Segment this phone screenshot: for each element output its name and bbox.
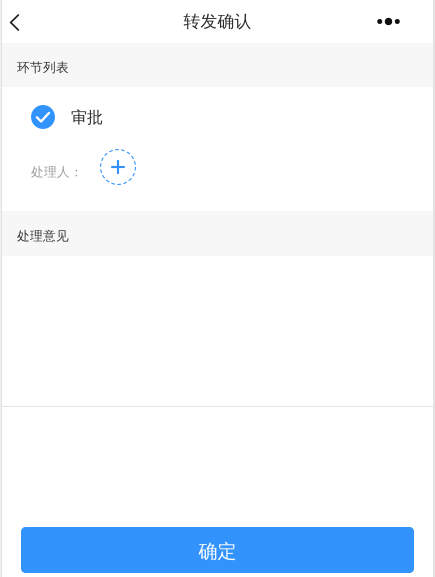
button[interactable]: Back bbox=[0, 0, 28, 43]
button[interactable]: 处理意见 bbox=[0, 256, 435, 407]
staticText: 环节列表 bbox=[17, 59, 69, 75]
button[interactable]: Add handler bbox=[83, 147, 136, 185]
button[interactable]: More options bbox=[342, 0, 435, 43]
staticText: 审批 bbox=[71, 107, 103, 128]
staticText: 处理意见 bbox=[17, 228, 69, 244]
staticText: 处理人： bbox=[31, 164, 83, 180]
staticText: 确定 bbox=[198, 539, 236, 563]
button[interactable]: 确定 bbox=[21, 527, 414, 573]
staticText: 转发确认 bbox=[183, 11, 251, 32]
